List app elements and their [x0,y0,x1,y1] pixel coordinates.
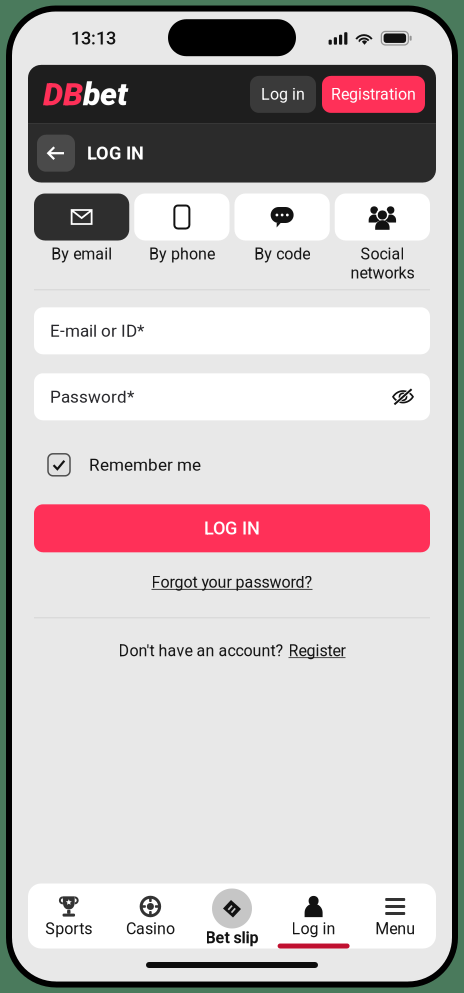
button[interactable]: Casino [110,883,191,948]
staticText: Bet slip [205,928,258,947]
button[interactable]: LOG IN [34,504,430,552]
staticText: Register [288,641,345,660]
button[interactable]: Sports [28,883,110,948]
staticText: By code [254,245,310,263]
staticText: DB [43,76,83,113]
button[interactable]: Log in [250,76,316,113]
staticText: Sports [45,919,92,938]
button[interactable]: Bet slip [191,883,273,948]
button[interactable]: Password* [34,373,430,420]
staticText: By email [51,245,112,263]
button[interactable]: Registration [322,76,425,113]
staticText: LOG IN [204,518,260,539]
button[interactable]: By phone [134,193,229,289]
staticText: Don't have an account? [118,641,283,660]
staticText: LOG IN [87,143,144,164]
button[interactable]: Register [288,641,345,660]
button[interactable]: Back [37,135,75,172]
staticText: 13:13 [71,28,116,49]
staticText: bet [83,76,128,113]
staticText: Casino [126,919,175,938]
button[interactable]: Remember me [34,447,430,482]
button[interactable]: Forgot your password? [151,565,312,599]
button[interactable]: Social [335,193,430,289]
staticText: E-mail or ID* [50,321,144,341]
button[interactable]: Menu [354,883,436,948]
staticText: Registration [331,85,416,104]
staticText: Menu [375,919,415,938]
staticText: Log in [292,919,336,938]
button[interactable]: By code [234,193,330,289]
button[interactable]: By email [34,193,129,289]
button[interactable]: E-mail or ID* [34,307,430,354]
staticText: networks [350,264,414,282]
staticText: Remember me [89,455,201,475]
staticText: Password* [50,387,134,407]
button[interactable]: Log in [273,883,354,948]
staticText: Social [360,245,404,263]
staticText: Forgot your password? [151,573,312,592]
staticText: By phone [149,245,215,263]
staticText: Log in [261,85,305,104]
